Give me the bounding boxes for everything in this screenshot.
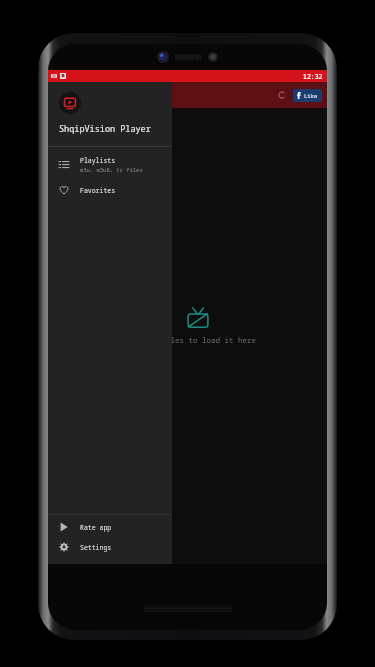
button[interactable]: Refresh bbox=[274, 87, 290, 103]
staticText: m3u, m3u8, ts files bbox=[80, 166, 143, 173]
staticText: 12:32 bbox=[303, 72, 323, 81]
staticText: Playlists bbox=[80, 156, 116, 165]
staticText: Like bbox=[304, 92, 318, 99]
button[interactable]: Like bbox=[293, 89, 322, 102]
staticText: ShqipVision Player bbox=[59, 123, 151, 135]
staticText: Rate app bbox=[80, 523, 112, 532]
button[interactable]: Settings bbox=[48, 537, 172, 557]
staticText: Settings bbox=[80, 543, 112, 552]
button[interactable]: Rate app bbox=[48, 517, 172, 537]
staticText: Favorites bbox=[80, 186, 116, 195]
button[interactable]: Favorites bbox=[48, 179, 172, 201]
button[interactable]: Playlists bbox=[48, 150, 172, 179]
staticText: IPTV files to load it here bbox=[139, 335, 256, 345]
